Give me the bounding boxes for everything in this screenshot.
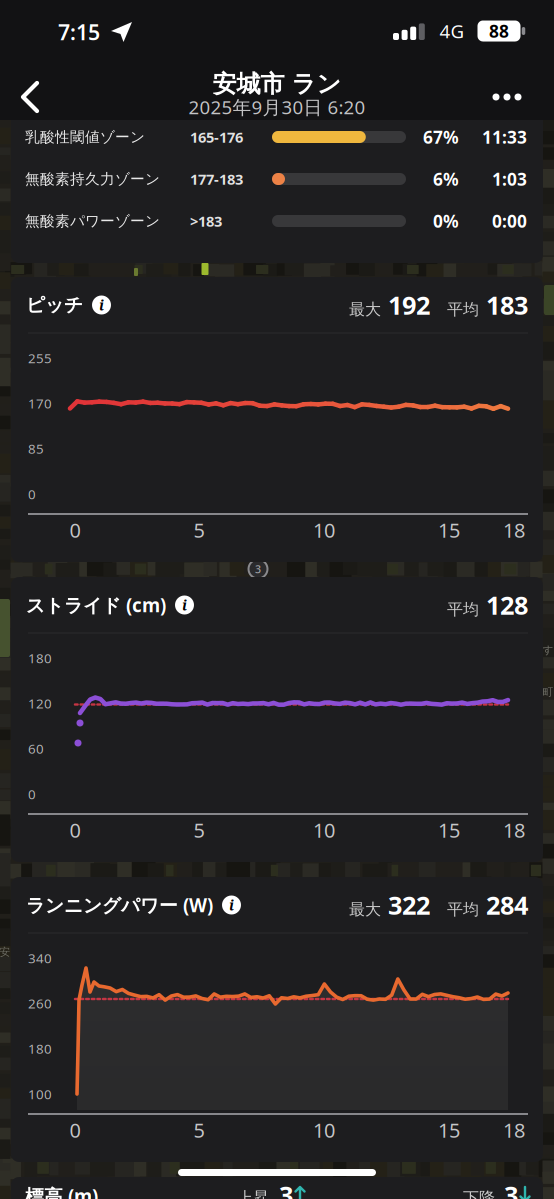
staticText: 平均	[447, 900, 479, 919]
staticText: 5	[193, 1117, 204, 1143]
staticText: 0	[28, 785, 36, 803]
staticText: 180	[28, 1040, 52, 1057]
staticText: 平均	[447, 600, 479, 619]
staticText: 最大	[349, 300, 381, 319]
staticText: 0	[69, 1117, 80, 1143]
staticText: 10	[313, 817, 335, 843]
staticText: 乳酸性閾値ゾーン	[25, 128, 145, 146]
staticText: >183	[190, 211, 222, 231]
staticText: 最大	[349, 900, 381, 919]
button[interactable]: 情報	[175, 595, 194, 614]
staticText: 5	[193, 517, 204, 543]
staticText: 平均	[447, 300, 479, 319]
staticText: 安城市 ラン	[212, 69, 341, 99]
staticText: i	[99, 295, 104, 315]
button[interactable]: More	[485, 75, 529, 119]
staticText: 128	[486, 588, 528, 622]
staticText: 18	[503, 517, 525, 543]
staticText: i	[182, 595, 187, 615]
staticText: 6%	[433, 167, 459, 190]
staticText: 無酸素パワーゾーン	[25, 212, 160, 230]
staticText: 0:00	[492, 209, 527, 232]
staticText: 15	[438, 817, 460, 843]
staticText: 192	[388, 288, 430, 322]
staticText: 88	[489, 19, 509, 42]
staticText: 1:03	[492, 167, 527, 190]
staticText: 284	[486, 888, 528, 922]
staticText: 3	[255, 562, 261, 576]
staticText: 255	[28, 349, 52, 367]
staticText: 10	[313, 517, 335, 543]
staticText: 15	[438, 1117, 460, 1143]
staticText: 18	[503, 817, 525, 843]
staticText: i	[229, 895, 234, 915]
staticText: 67%	[423, 125, 459, 148]
staticText: ストライド (cm)	[26, 593, 166, 617]
staticText: 85	[28, 440, 44, 457]
staticText: 2025年9月30日 6:20	[188, 95, 365, 119]
staticText: 100	[28, 1085, 52, 1103]
staticText: 7:15	[58, 18, 100, 46]
staticText: 11:33	[482, 125, 527, 148]
button[interactable]: Back	[8, 75, 52, 119]
staticText: ランニングパワー (W)	[26, 893, 213, 917]
staticText: 3	[279, 1178, 293, 1199]
button[interactable]: 情報	[222, 895, 241, 914]
staticText: 町	[542, 685, 553, 698]
staticText: 4G	[439, 19, 464, 43]
staticText: 177-183	[190, 169, 243, 189]
staticText: 下降	[463, 1188, 495, 1199]
staticText: 170	[28, 394, 52, 412]
staticText: 標高 (m)	[25, 1184, 98, 1199]
staticText: ピッチ	[26, 293, 83, 316]
staticText: 上昇	[237, 1188, 269, 1199]
staticText: 無酸素持久力ゾーン	[25, 170, 160, 188]
staticText: 183	[486, 288, 528, 322]
staticText: す	[542, 643, 553, 656]
button[interactable]: 情報	[92, 295, 111, 314]
staticText: 10	[313, 1117, 335, 1143]
staticText: 0	[28, 485, 36, 503]
staticText: 15	[438, 517, 460, 543]
staticText: 0%	[433, 209, 459, 232]
staticText: 340	[28, 949, 52, 967]
staticText: 180	[28, 649, 52, 667]
staticText: 0	[69, 817, 80, 843]
staticText: 18	[503, 1117, 525, 1143]
staticText: 5	[193, 817, 204, 843]
staticText: 322	[388, 888, 430, 922]
staticText: 260	[28, 994, 52, 1012]
staticText: 安	[0, 945, 10, 958]
staticText: 0	[69, 517, 80, 543]
staticText: 165-176	[190, 127, 243, 147]
staticText: 3	[504, 1178, 518, 1199]
staticText: 120	[28, 694, 52, 712]
staticText: 60	[28, 740, 44, 757]
